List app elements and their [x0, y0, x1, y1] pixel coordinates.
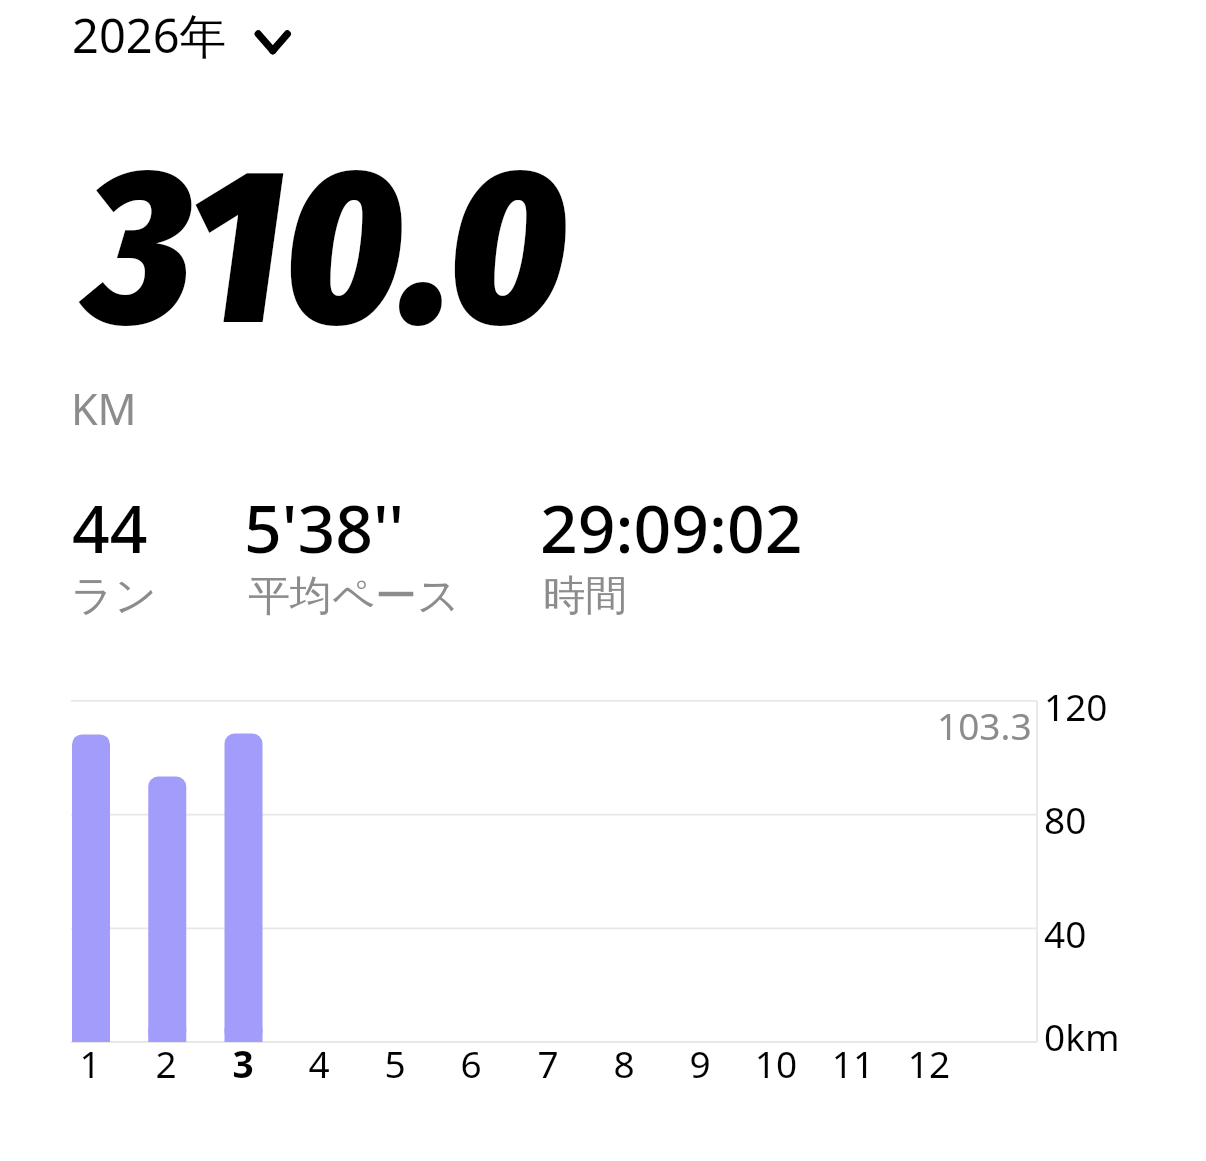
staticText: 7	[508, 1038, 588, 1082]
staticText: 5	[355, 1038, 435, 1082]
staticText: 3	[203, 1038, 283, 1082]
button[interactable]: 5'38''	[244, 482, 405, 572]
button[interactable]: 2	[126, 1038, 206, 1082]
button[interactable]: 44	[72, 482, 148, 572]
staticText: 6	[431, 1038, 511, 1082]
button[interactable]: 11	[813, 1038, 893, 1082]
button[interactable]: 10	[736, 1038, 816, 1082]
button[interactable]: 3	[203, 1038, 283, 1082]
button[interactable]: 5	[355, 1038, 435, 1082]
staticText: 29:09:02	[540, 482, 803, 572]
button[interactable]: 6	[431, 1038, 511, 1082]
staticText: 1	[50, 1038, 130, 1082]
button[interactable]: 29:09:02	[540, 482, 803, 572]
staticText: 8	[584, 1038, 664, 1082]
staticText: 4	[279, 1038, 359, 1082]
staticText: 40	[1044, 908, 1087, 958]
button[interactable]: 9	[660, 1038, 740, 1082]
staticText: 2026年	[72, 3, 227, 67]
staticText: 11	[813, 1038, 893, 1082]
staticText: 5'38''	[244, 482, 405, 572]
staticText: 10	[736, 1038, 816, 1082]
staticText: 平均ペース	[248, 570, 460, 623]
staticText: 120	[1044, 681, 1108, 731]
button[interactable]: 8	[584, 1038, 664, 1082]
other: Monthly distance chart	[0, 0, 1206, 1161]
staticText: 時間	[543, 570, 627, 623]
staticText: 0km	[1044, 1011, 1120, 1061]
staticText: ラン	[71, 570, 157, 623]
button[interactable]: 12	[889, 1038, 969, 1082]
staticText: 80	[1044, 794, 1087, 844]
staticText: 44	[72, 482, 148, 572]
staticText: 310.0	[89, 118, 569, 380]
button[interactable]: 7	[508, 1038, 588, 1082]
staticText: 9	[660, 1038, 740, 1082]
button[interactable]: 1	[50, 1038, 130, 1082]
button[interactable]: Change year	[246, 16, 299, 68]
staticText: 2	[126, 1038, 206, 1082]
button[interactable]: 4	[279, 1038, 359, 1082]
staticText: KM	[71, 379, 137, 438]
button[interactable]: 2026年	[56, 0, 243, 83]
staticText: 103.3	[937, 700, 1032, 750]
staticText: 12	[889, 1038, 969, 1082]
